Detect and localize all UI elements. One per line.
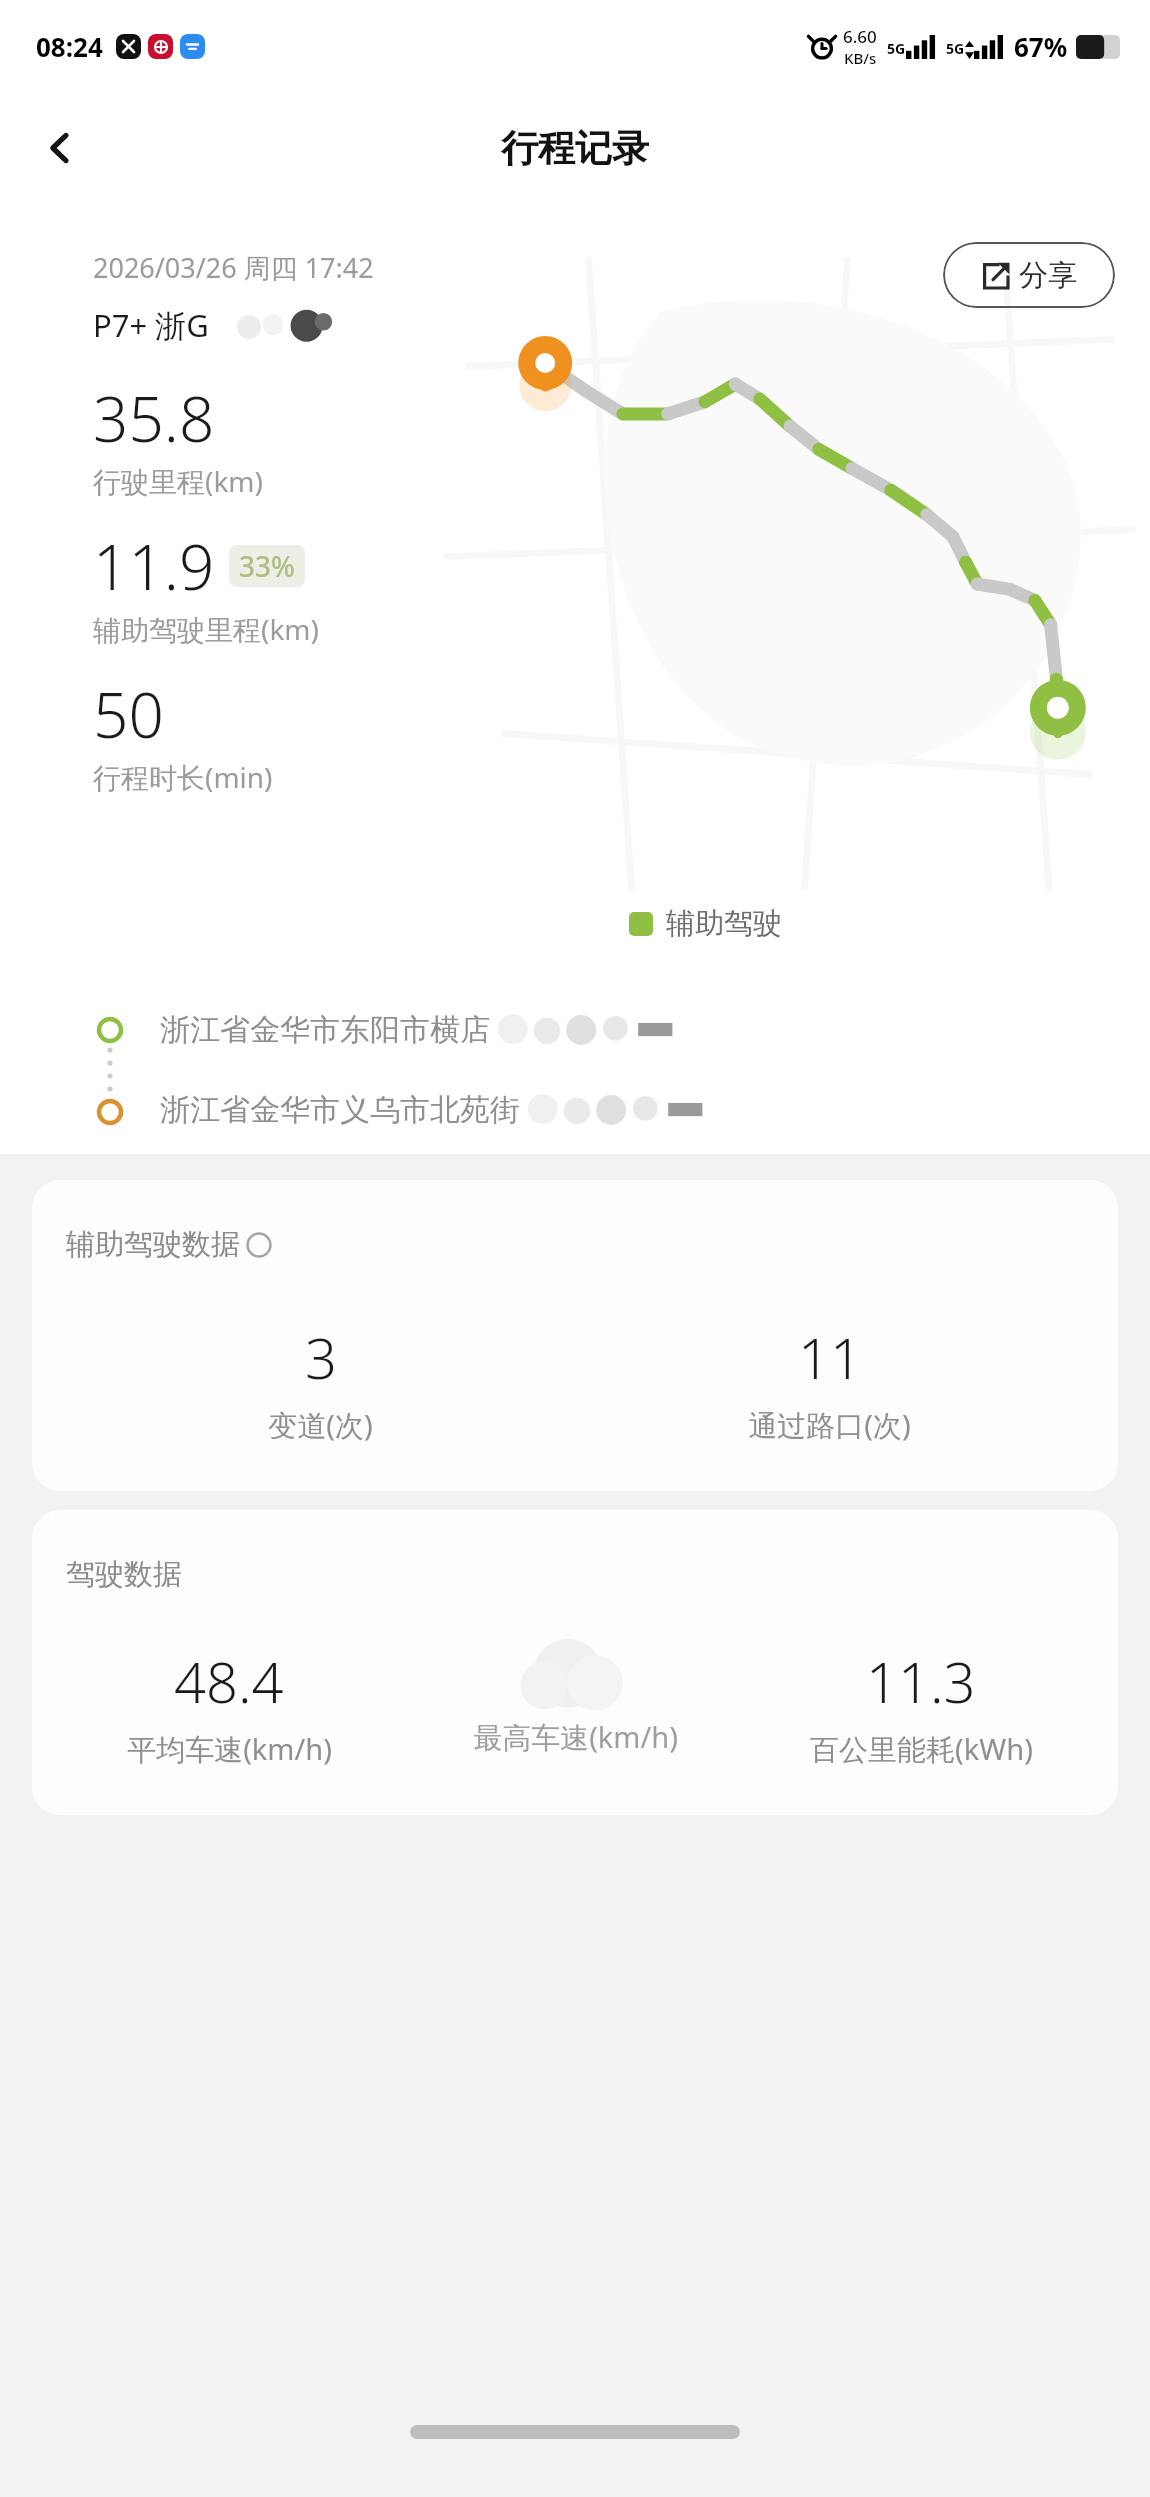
staticText: 辅助驾驶 <box>666 905 782 942</box>
staticText: 2026/03/26 周四 17:42 <box>93 249 374 286</box>
staticText: 5G <box>887 39 906 58</box>
staticText: 行程记录 <box>501 125 649 172</box>
button[interactable]: 分享 <box>943 242 1115 308</box>
staticText: 辅助驾驶里程(km) <box>93 610 319 648</box>
staticText: 50 <box>93 672 164 756</box>
staticText: 6.60 <box>843 25 877 48</box>
staticText: 08:24 <box>36 29 103 64</box>
staticText: 平均车速(km/h) <box>127 1729 332 1769</box>
staticText: 35.8 <box>93 376 215 460</box>
staticText: 通过路口(次) <box>748 1405 911 1445</box>
staticText: P7+ 浙G <box>93 304 209 346</box>
staticText: 百公里能耗(kWh) <box>810 1729 1033 1769</box>
staticText: 33% <box>239 547 295 585</box>
staticText: 浙江省金华市东阳市横店 <box>160 1011 490 1049</box>
staticText: 行程时长(min) <box>93 758 273 796</box>
staticText: 驾驶数据 <box>66 1556 182 1593</box>
button[interactable]: 驾驶数据 <box>32 1510 1118 1815</box>
staticText: KB/s <box>844 48 877 68</box>
button[interactable]: Back <box>22 110 98 186</box>
staticText: 浙江省金华市义乌市北苑街 <box>160 1091 520 1129</box>
staticText: 变道(次) <box>268 1405 373 1445</box>
button[interactable]: 辅助驾驶数据 <box>32 1180 1118 1491</box>
staticText: 11 <box>798 1319 862 1395</box>
staticText: 48.4 <box>174 1643 284 1719</box>
staticText: 最高车速(km/h) <box>473 1717 678 1757</box>
staticText: 分享 <box>1019 257 1077 294</box>
staticText: 11.3 <box>866 1643 976 1719</box>
staticText: 辅助驾驶数据 <box>66 1226 240 1263</box>
staticText: 11.9 <box>93 524 215 608</box>
staticText: 行驶里程(km) <box>93 462 263 500</box>
staticText: 67% <box>1014 29 1068 64</box>
staticText: 3 <box>305 1319 337 1395</box>
staticText: 5G <box>946 39 965 58</box>
